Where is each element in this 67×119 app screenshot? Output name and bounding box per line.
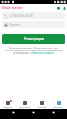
- staticText: Главная: [3, 106, 13, 109]
- staticText: Мой налог: [2, 5, 24, 10]
- button[interactable]: +7 900 000-00-00: [2, 12, 65, 19]
- staticText: соглашаетесь с условиями использования: [5, 49, 63, 51]
- staticText: Пароль: [9, 23, 20, 27]
- button[interactable]: офертой сервиса: [31, 51, 55, 54]
- staticText: и согласны с: [13, 51, 31, 54]
- staticText: Платежи: [37, 106, 47, 109]
- staticText: Операции: [19, 106, 31, 109]
- button[interactable]: Операции: [16, 100, 33, 109]
- button[interactable]: Регистрация: [2, 34, 65, 44]
- staticText: Регистрация: [24, 37, 44, 41]
- button[interactable]: Профиль: [50, 100, 67, 109]
- button[interactable]: Главная: [0, 100, 16, 109]
- staticText: Профиль: [53, 106, 64, 109]
- button[interactable]: Платежи: [33, 100, 50, 109]
- staticText: Нажимая кнопку «Регистрация», вы: [9, 47, 58, 49]
- staticText: +7 900 000-00-00: [9, 14, 34, 18]
- button[interactable]: Пароль: [2, 21, 65, 28]
- button[interactable]: Chat: [55, 5, 61, 11]
- button[interactable]: Profile: [61, 5, 67, 11]
